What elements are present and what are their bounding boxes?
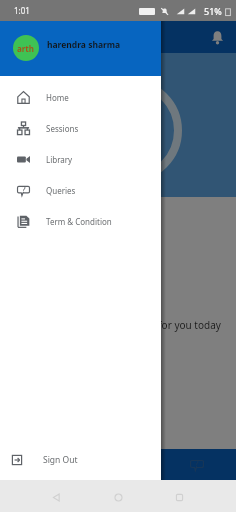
staticText: Queries: [46, 185, 76, 196]
button[interactable]: Sessions: [0, 113, 161, 144]
staticText: arth: [17, 43, 35, 54]
button[interactable]: Recents: [174, 492, 185, 503]
staticText: 51%: [204, 5, 222, 17]
button[interactable]: Home: [113, 492, 124, 503]
staticText: ?: [22, 184, 26, 195]
staticText: Library: [46, 154, 73, 165]
staticText: No sessions scheduled for you today: [49, 318, 221, 332]
button[interactable]: Queries: [157, 449, 236, 480]
staticText: 1:01: [14, 5, 30, 16]
button[interactable]: Library: [0, 144, 161, 175]
staticText: Sign Out: [43, 454, 78, 466]
staticText: Home: [46, 92, 69, 103]
button[interactable]: Term & Condition: [0, 206, 161, 237]
button[interactable]: Back: [51, 492, 62, 503]
staticText: harendra sharma: [47, 39, 121, 51]
button[interactable]: Home: [0, 449, 78, 480]
button[interactable]: Notifications: [210, 30, 225, 45]
button[interactable]: Sign Out: [0, 447, 161, 473]
staticText: Term & Condition: [46, 216, 112, 227]
staticText: ?: [195, 458, 199, 469]
button[interactable]: Home: [0, 82, 161, 113]
button[interactable]: ?: [0, 175, 161, 206]
staticText: Sessions: [46, 123, 79, 134]
